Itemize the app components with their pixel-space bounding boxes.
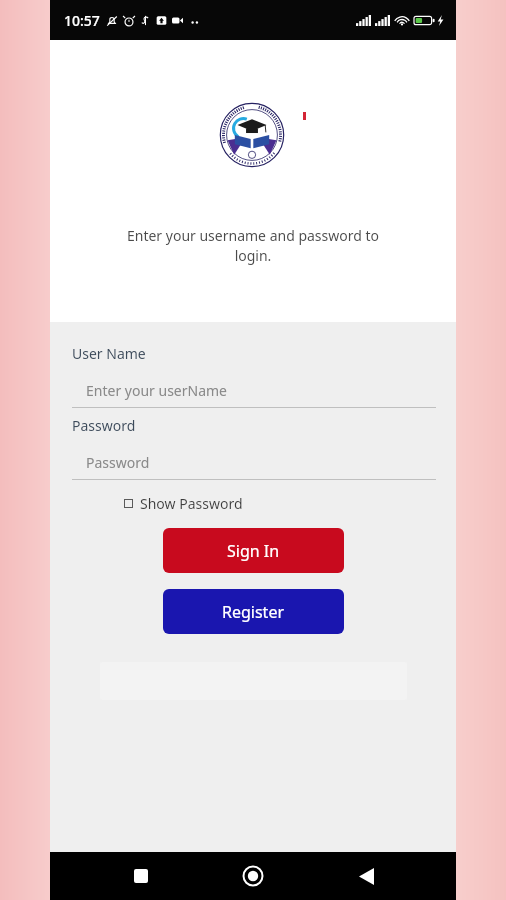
staticText: Enter your userName	[86, 381, 228, 400]
staticText: Sign In	[227, 540, 280, 562]
button[interactable]: Sign In	[163, 528, 344, 573]
staticText: Password	[72, 416, 136, 435]
button[interactable]: Enter your userName	[72, 373, 436, 407]
button[interactable]: Back	[344, 854, 388, 898]
button[interactable]: Home	[231, 854, 275, 898]
button[interactable]: Password	[72, 445, 436, 479]
staticText: Register	[222, 601, 285, 623]
staticText: 10:57	[64, 11, 100, 30]
staticText: User Name	[72, 344, 146, 363]
button[interactable]: Show Password	[124, 490, 251, 517]
staticText: Enter your username and password to logi…	[80, 226, 426, 265]
button[interactable]: Register	[163, 589, 344, 634]
staticText: Show Password	[140, 494, 243, 513]
staticText: Password	[86, 453, 150, 472]
button[interactable]: Recent apps	[119, 854, 163, 898]
